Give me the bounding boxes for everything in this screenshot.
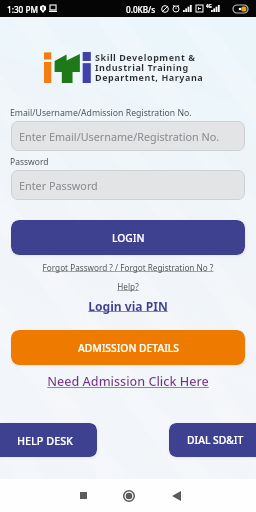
staticText: Email/Username/Admission Registration No… (10, 107, 192, 119)
staticText: Skill Development & (95, 51, 196, 63)
button[interactable]: Home (113, 480, 144, 511)
button[interactable]: Login via PIN (0, 298, 256, 314)
button[interactable]: Help? (0, 281, 256, 292)
button[interactable]: HELP DESK (0, 423, 97, 457)
staticText: Password (10, 156, 49, 168)
staticText: HELP DESK (17, 433, 73, 448)
button[interactable]: ADMISSION DETAILS (11, 330, 245, 365)
button[interactable]: DIAL SD&IT (169, 423, 256, 457)
staticText: Enter Password (19, 178, 98, 193)
staticText: 1:30 PM (7, 4, 38, 15)
button[interactable]: Need Admission Click Here (0, 373, 256, 390)
staticText: LOGIN (112, 231, 145, 245)
button[interactable]: LOGIN (11, 220, 245, 255)
button[interactable]: Enter Email/Username/Registration No. (11, 121, 245, 151)
staticText: DIAL SD&IT (187, 433, 244, 447)
staticText: ADMISSION DETAILS (78, 341, 179, 355)
staticText: 0.0KB/s (126, 4, 156, 15)
staticText: Enter Email/Username/Registration No. (19, 129, 220, 144)
button[interactable]: Enter Password (11, 170, 245, 200)
staticText: Department, Haryana (95, 71, 204, 83)
button[interactable]: Back (161, 480, 192, 511)
staticText: 4G (206, 3, 212, 9)
button[interactable]: Forgot Password ? / Forgot Registration … (0, 262, 256, 273)
button[interactable]: Recents (68, 480, 99, 511)
staticText: Industrial Training (95, 61, 189, 73)
